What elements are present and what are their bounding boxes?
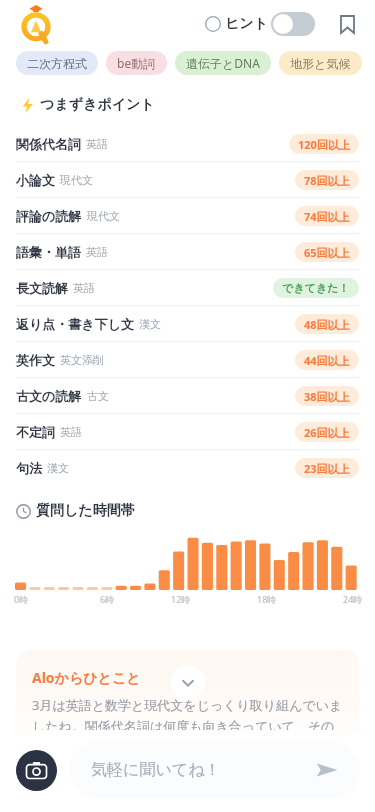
- button[interactable]: 語彙・単語: [0, 234, 375, 269]
- staticText: 24時: [343, 593, 363, 605]
- staticText: 漢文: [47, 461, 69, 475]
- staticText: 44回以上: [304, 353, 350, 368]
- staticText: 65回以上: [304, 245, 350, 260]
- staticText: 英文添削: [60, 353, 104, 367]
- staticText: 二次方程式: [27, 56, 87, 71]
- staticText: 英語: [86, 245, 108, 259]
- button[interactable]: 返り点・書き下し文: [0, 306, 375, 341]
- button[interactable]: 小論文: [0, 162, 375, 197]
- button[interactable]: 古文の読解: [0, 378, 375, 413]
- staticText: 語彙・単語: [16, 244, 81, 260]
- staticText: 0時: [14, 593, 29, 605]
- staticText: 26回以上: [304, 425, 350, 440]
- staticText: 120回以上: [298, 137, 350, 152]
- button[interactable]: 二次方程式: [16, 51, 98, 75]
- staticText: 3月は英語と数学と現代文をじっくり取り組んでいましたね。関係代名詞は何度も向き合…: [32, 696, 343, 735]
- button[interactable]: 不定詞: [0, 414, 375, 449]
- staticText: 漢文: [139, 317, 161, 331]
- button[interactable]: ホーム: [16, 2, 56, 42]
- staticText: 6時: [100, 593, 115, 605]
- staticText: 現代文: [87, 209, 120, 223]
- button[interactable]: 地形と気候: [279, 51, 362, 75]
- button[interactable]: 展開: [171, 666, 205, 700]
- staticText: 質問した時間帯: [36, 502, 135, 520]
- staticText: 気軽に聞いてね！: [91, 760, 221, 780]
- button[interactable]: 関係代名詞: [0, 126, 375, 161]
- staticText: できてきた！: [282, 281, 350, 295]
- staticText: 句法: [16, 460, 42, 476]
- staticText: 英作文: [16, 352, 55, 368]
- staticText: be動詞: [117, 55, 156, 71]
- button[interactable]: Aloからひとこと: [16, 650, 359, 742]
- staticText: 英語: [86, 137, 108, 151]
- button[interactable]: be動詞: [106, 51, 167, 75]
- button[interactable]: カメラ: [16, 750, 57, 791]
- staticText: 古文の読解: [16, 388, 82, 404]
- staticText: 74回以上: [304, 209, 350, 224]
- staticText: 関係代名詞: [16, 136, 81, 152]
- staticText: 23回以上: [304, 461, 350, 476]
- staticText: 遺伝子とDNA: [186, 55, 260, 71]
- staticText: Aloからひとこと: [32, 668, 141, 687]
- button[interactable]: 送信: [314, 757, 340, 783]
- staticText: 現代文: [60, 173, 93, 187]
- button[interactable]: 英作文: [0, 342, 375, 377]
- staticText: 48回以上: [304, 317, 350, 332]
- staticText: 78回以上: [304, 173, 350, 188]
- button[interactable]: ヒント: [203, 8, 317, 40]
- staticText: 長文読解: [16, 280, 68, 296]
- staticText: つまずきポイント: [40, 96, 155, 114]
- staticText: 小論文: [16, 172, 55, 188]
- staticText: 12時: [171, 593, 191, 605]
- staticText: 返り点・書き下し文: [16, 316, 134, 332]
- staticText: 英語: [60, 425, 82, 439]
- staticText: 英語: [73, 281, 95, 295]
- button[interactable]: 評論の読解: [0, 198, 375, 233]
- button[interactable]: 遺伝子とDNA: [175, 51, 271, 75]
- button[interactable]: 長文読解: [0, 270, 375, 305]
- staticText: 18時: [257, 593, 277, 605]
- staticText: 古文: [87, 389, 109, 403]
- staticText: 地形と気候: [290, 56, 351, 71]
- staticText: 評論の読解: [16, 208, 82, 224]
- staticText: 不定詞: [16, 424, 55, 440]
- button[interactable]: ブックマーク: [331, 8, 363, 40]
- staticText: 38回以上: [304, 389, 350, 404]
- staticText: ヒント: [225, 15, 268, 33]
- button[interactable]: 句法: [0, 450, 375, 485]
- button[interactable]: 気軽に聞いてね！: [69, 742, 360, 798]
